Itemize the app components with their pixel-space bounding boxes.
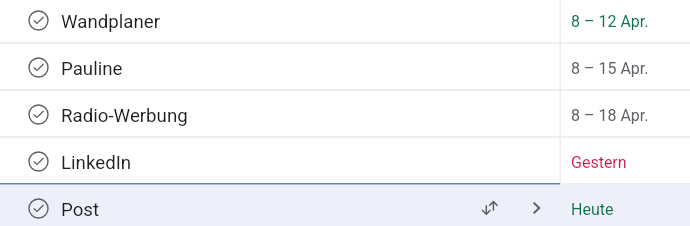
staticText: LinkedIn (61, 152, 132, 174)
staticText: Heute (571, 200, 614, 219)
button[interactable]: Reorder task (481, 184, 499, 226)
staticText: Post (61, 199, 100, 221)
button[interactable]: Open task details (529, 184, 545, 226)
button[interactable]: Radio-Werbung (0, 91, 690, 138)
staticText: 8 – 15 Apr. (571, 59, 649, 78)
staticText: Gestern (571, 153, 627, 172)
staticText: Wandplaner (61, 11, 161, 33)
button[interactable]: LinkedIn (0, 138, 690, 185)
staticText: Radio-Werbung (61, 105, 188, 127)
staticText: Pauline (61, 58, 123, 80)
button[interactable]: Post (0, 185, 690, 226)
button[interactable]: Pauline (0, 44, 690, 91)
staticText: 8 – 12 Apr. (571, 12, 649, 31)
button[interactable]: Wandplaner (0, 0, 690, 44)
staticText: 8 – 18 Apr. (571, 106, 649, 125)
